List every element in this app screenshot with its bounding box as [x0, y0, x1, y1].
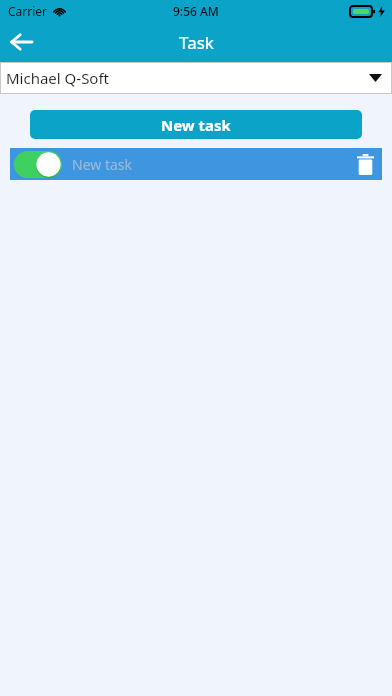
staticText: Task	[179, 31, 214, 54]
staticText: New task	[161, 115, 231, 135]
button[interactable]: Toggle task	[10, 148, 382, 180]
button[interactable]: Michael Q-Soft	[0, 62, 392, 94]
staticText: Carrier	[8, 3, 48, 19]
button[interactable]: Delete task	[348, 148, 382, 180]
staticText: 9:56 AM	[173, 3, 219, 19]
button[interactable]: Toggle task	[14, 150, 64, 178]
staticText: New task	[72, 155, 132, 174]
button[interactable]: New task	[30, 110, 362, 139]
staticText: Michael Q-Soft	[6, 68, 110, 88]
button[interactable]: Back	[0, 22, 44, 62]
